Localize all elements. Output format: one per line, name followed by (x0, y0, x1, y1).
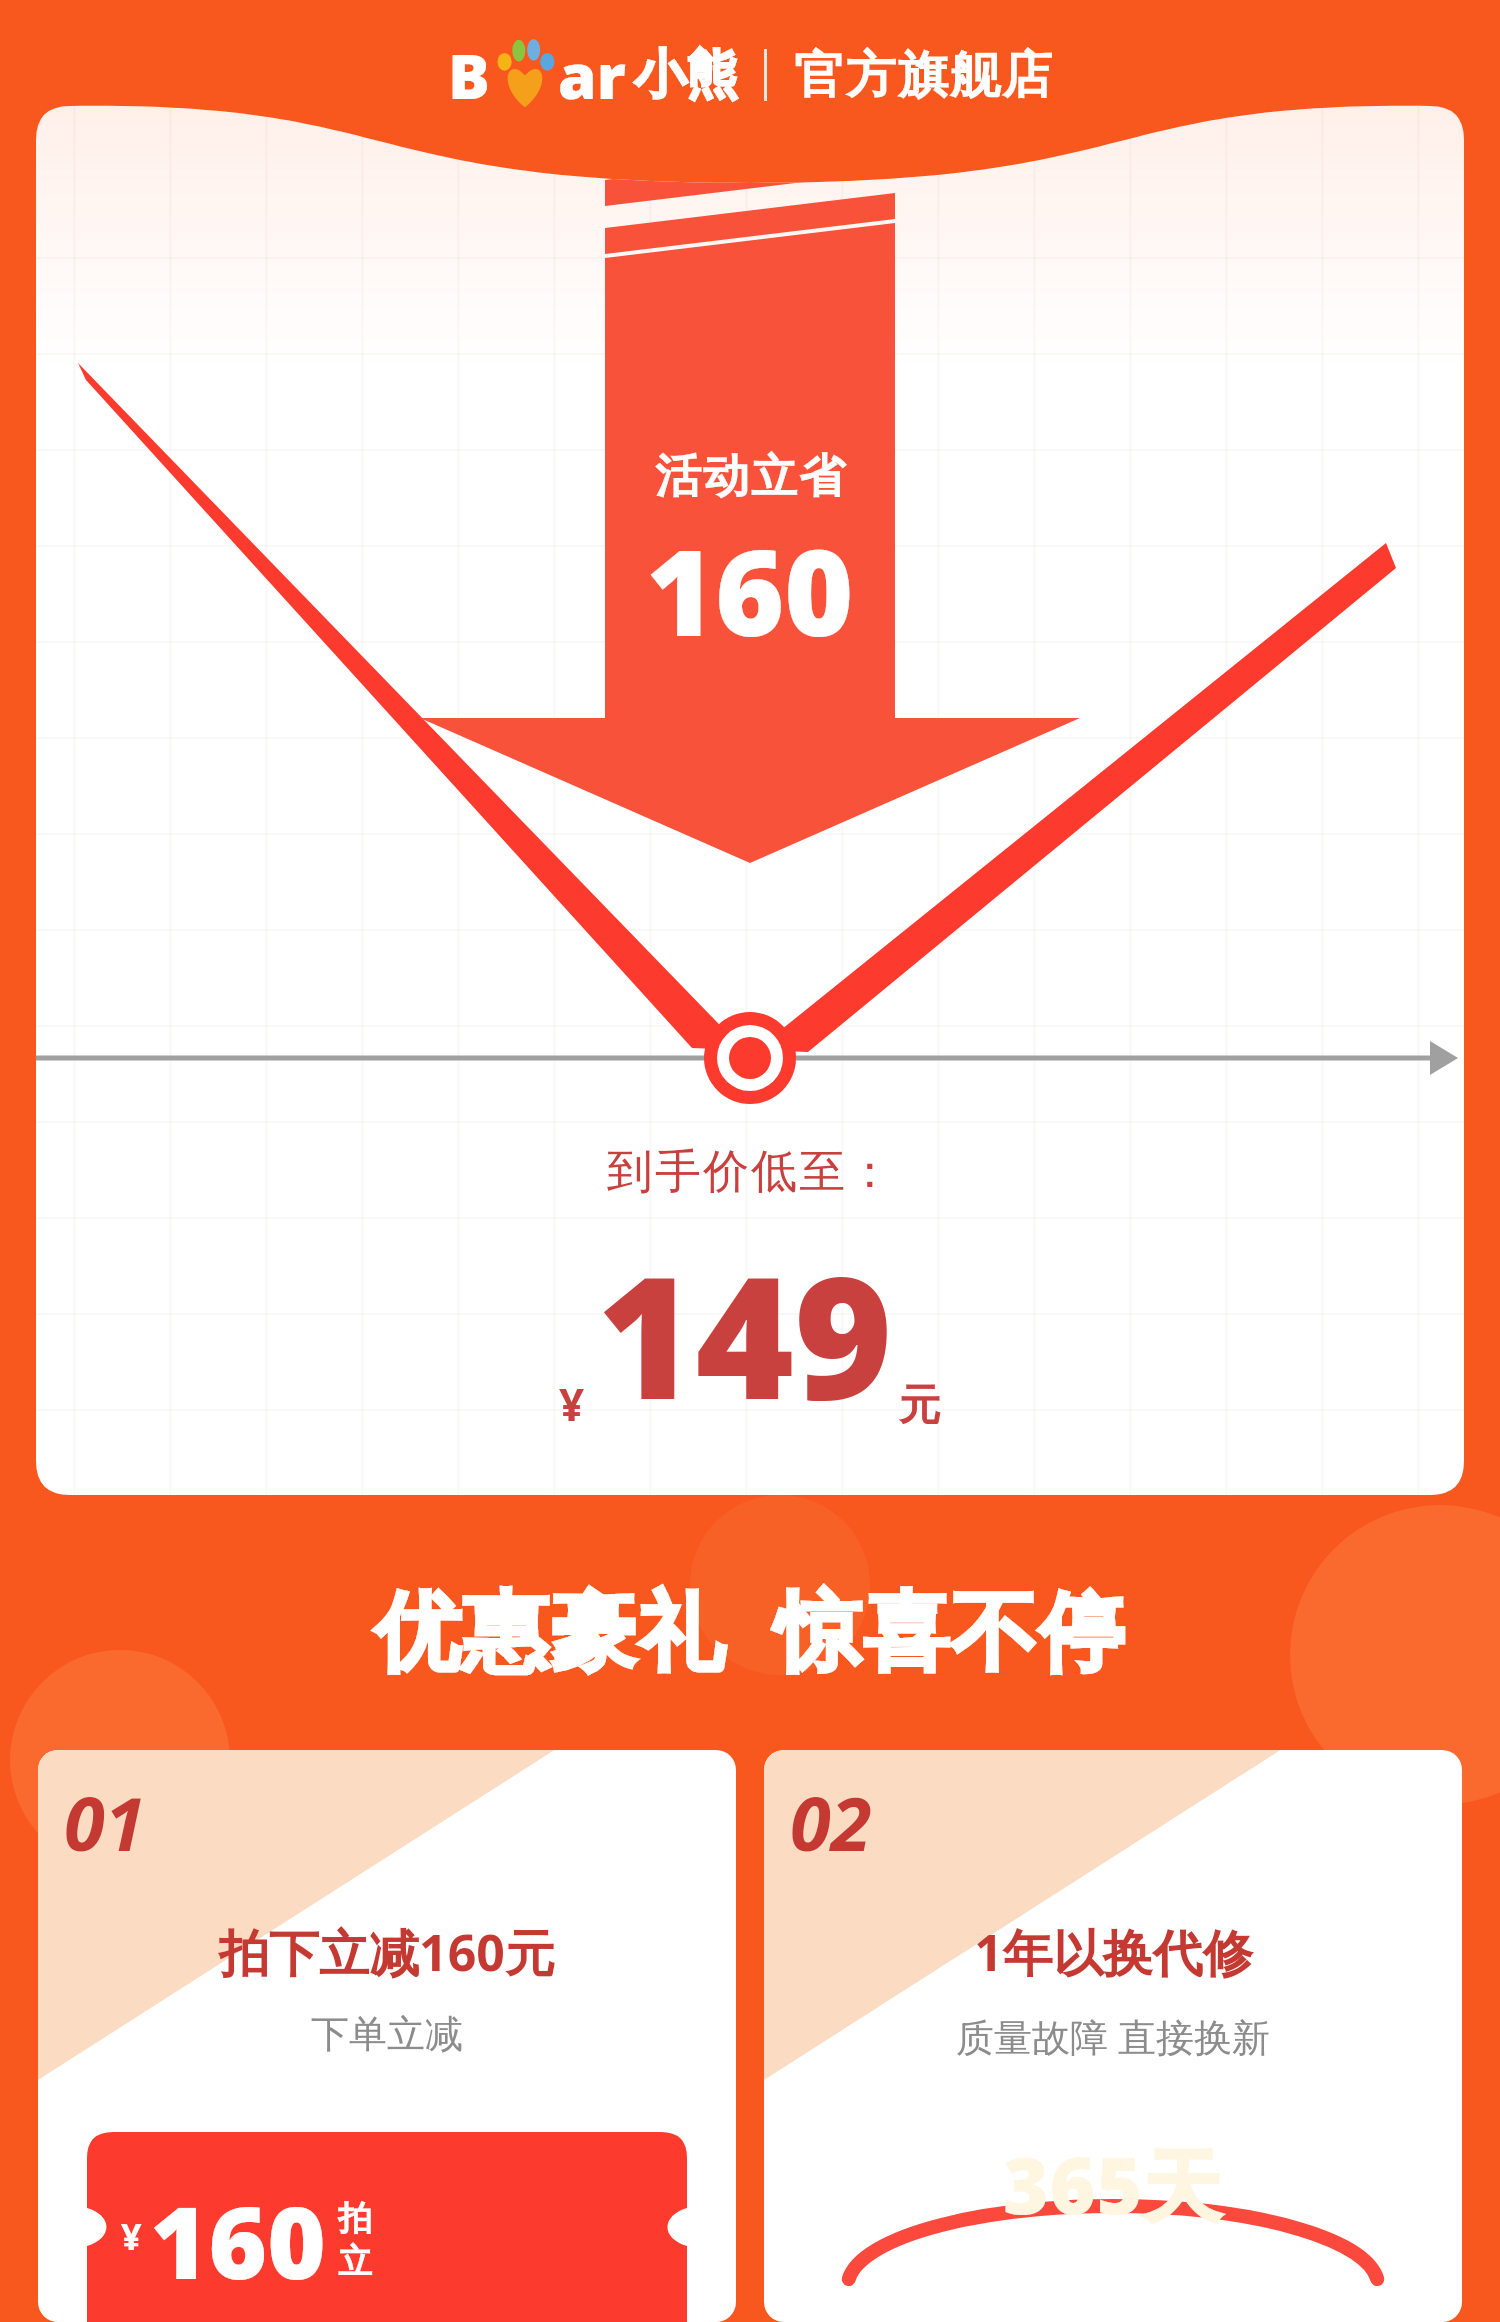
staticText: 02 (790, 1772, 872, 1873)
staticText: 160 (646, 510, 854, 671)
staticText: 149 (597, 1219, 893, 1448)
staticText: 拍下立减160元 (219, 1918, 555, 1986)
staticText: 1年以换代修 (974, 1918, 1253, 1986)
staticText: 优惠豪礼 惊喜不停 (374, 1570, 1127, 1687)
staticText: 到手价低至： (606, 1143, 894, 1201)
staticText: 拍 (338, 2197, 372, 2240)
staticText: 小熊 (634, 42, 738, 108)
staticText: 活动立省 (654, 448, 846, 506)
staticText: ¥ (121, 2212, 142, 2261)
staticText: 160 (150, 2172, 326, 2308)
staticText: 01 (64, 1772, 146, 1873)
staticText: ar (558, 33, 626, 117)
staticText: 元 (899, 1379, 941, 1432)
staticText: 365天 (1003, 2131, 1223, 2238)
button[interactable]: 01 (38, 1750, 736, 2322)
button[interactable]: 02 (764, 1750, 1462, 2322)
staticText: 下单立减 (311, 2010, 463, 2058)
staticText: 质量故障 直接换新 (956, 2010, 1270, 2062)
staticText: 官方旗舰店 (793, 44, 1053, 107)
staticText: B (448, 33, 490, 117)
staticText: 立 (338, 2240, 372, 2283)
staticText: ¥ (559, 1374, 585, 1434)
button[interactable]: B (0, 0, 1500, 150)
